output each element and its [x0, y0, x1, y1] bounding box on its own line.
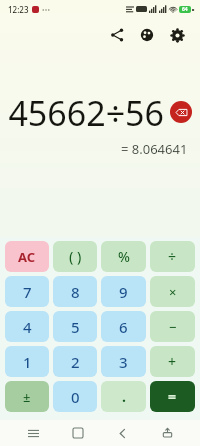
- button[interactable]: 4: [5, 311, 49, 342]
- button[interactable]: 5: [53, 311, 97, 342]
- staticText: 9: [119, 282, 128, 302]
- button[interactable]: 8: [53, 276, 97, 307]
- staticText: AC: [18, 248, 36, 266]
- button[interactable]: Theme: [132, 20, 162, 50]
- staticText: 64: [182, 6, 188, 13]
- button[interactable]: 1: [5, 346, 49, 377]
- staticText: +: [168, 352, 177, 371]
- button[interactable]: Back: [110, 421, 134, 445]
- button[interactable]: 2: [53, 346, 97, 377]
- button[interactable]: 6: [101, 311, 146, 342]
- staticText: 4: [23, 317, 32, 337]
- button[interactable]: 3: [101, 346, 146, 377]
- button[interactable]: Delete: [170, 101, 192, 123]
- staticText: 7: [23, 282, 32, 302]
- button[interactable]: ×: [150, 276, 195, 307]
- staticText: ( ): [69, 247, 82, 266]
- staticText: 0: [71, 387, 80, 407]
- button[interactable]: ±: [5, 381, 49, 412]
- button[interactable]: Share: [102, 20, 132, 50]
- button[interactable]: ( ): [53, 241, 97, 272]
- staticText: 12:23: [8, 4, 29, 15]
- staticText: −: [169, 318, 177, 336]
- button[interactable]: Recents: [21, 421, 45, 445]
- staticText: ±: [23, 388, 31, 406]
- staticText: 2: [71, 352, 80, 372]
- staticText: 8: [71, 282, 80, 302]
- staticText: =: [168, 387, 177, 406]
- button[interactable]: −: [150, 311, 195, 342]
- staticText: 6: [119, 317, 128, 337]
- staticText: = 8.064641: [121, 140, 188, 158]
- button[interactable]: 7: [5, 276, 49, 307]
- staticText: 45662÷5662: [0, 90, 164, 134]
- button[interactable]: %: [101, 241, 146, 272]
- staticText: ×: [169, 283, 177, 301]
- button[interactable]: =: [150, 381, 195, 412]
- button[interactable]: Home: [66, 421, 90, 445]
- staticText: 1: [23, 352, 32, 372]
- staticText: ÷: [168, 247, 177, 266]
- staticText: .: [122, 387, 126, 406]
- staticText: 5: [71, 317, 80, 337]
- button[interactable]: Keyboard: [155, 421, 179, 445]
- button[interactable]: 9: [101, 276, 146, 307]
- button[interactable]: .: [101, 381, 146, 412]
- button[interactable]: +: [150, 346, 195, 377]
- button[interactable]: AC: [5, 241, 49, 272]
- button[interactable]: ÷: [150, 241, 195, 272]
- button[interactable]: Settings: [162, 20, 192, 50]
- button[interactable]: 0: [53, 381, 97, 412]
- staticText: %: [118, 247, 130, 266]
- staticText: 3: [119, 352, 128, 372]
